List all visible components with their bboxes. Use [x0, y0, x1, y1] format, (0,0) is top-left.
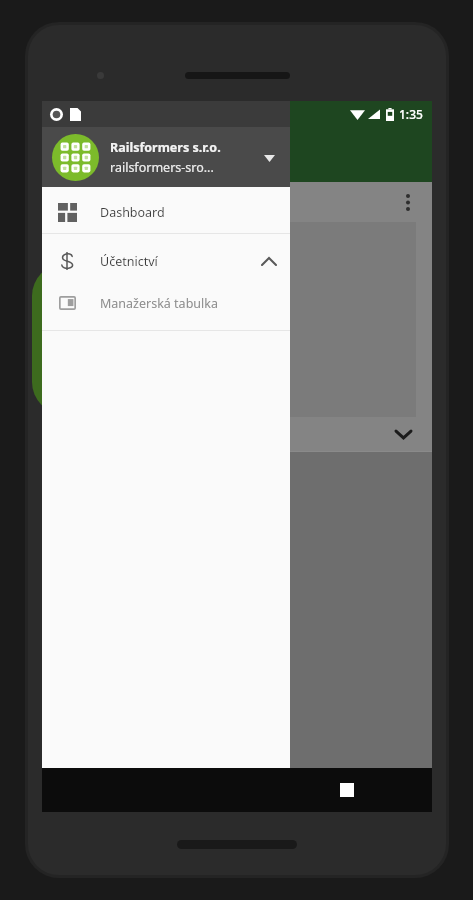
staticText: Účetnictví — [100, 253, 262, 270]
button[interactable]: Railsformers s.r.o. — [42, 127, 290, 187]
button[interactable]: Dashboard — [42, 191, 290, 233]
staticText: Dashboard — [100, 204, 276, 221]
button[interactable]: Recent apps — [323, 768, 371, 812]
button[interactable]: Účetnictví — [42, 240, 290, 282]
staticText: railsformers-sro... — [110, 159, 214, 176]
button[interactable]: More options — [396, 190, 420, 214]
button[interactable]: Manažerská tabulka — [42, 282, 290, 324]
button[interactable]: Switch account — [256, 145, 282, 171]
staticText: Manažerská tabulka — [100, 295, 276, 312]
staticText: Railsformers s.r.o. — [110, 139, 221, 156]
button[interactable]: Expand — [390, 421, 416, 447]
staticText: 1:35 — [399, 106, 423, 122]
